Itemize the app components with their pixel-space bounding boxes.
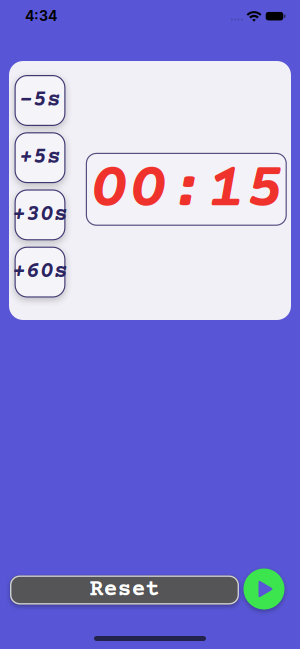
staticText: 00:15 <box>89 154 284 227</box>
button[interactable]: Start <box>243 568 284 609</box>
staticText: +60s <box>12 259 68 285</box>
button[interactable]: +60s <box>14 247 65 298</box>
staticText: +30s <box>12 202 68 228</box>
staticText: 4:34 <box>25 7 57 24</box>
staticText: -5s <box>19 88 61 113</box>
staticText: +5s <box>19 145 61 170</box>
button[interactable]: +5s <box>14 132 65 183</box>
staticText: Reset <box>89 577 159 603</box>
button[interactable]: +30s <box>14 189 65 240</box>
button[interactable]: Reset <box>10 575 239 604</box>
button[interactable]: -5s <box>14 75 65 126</box>
